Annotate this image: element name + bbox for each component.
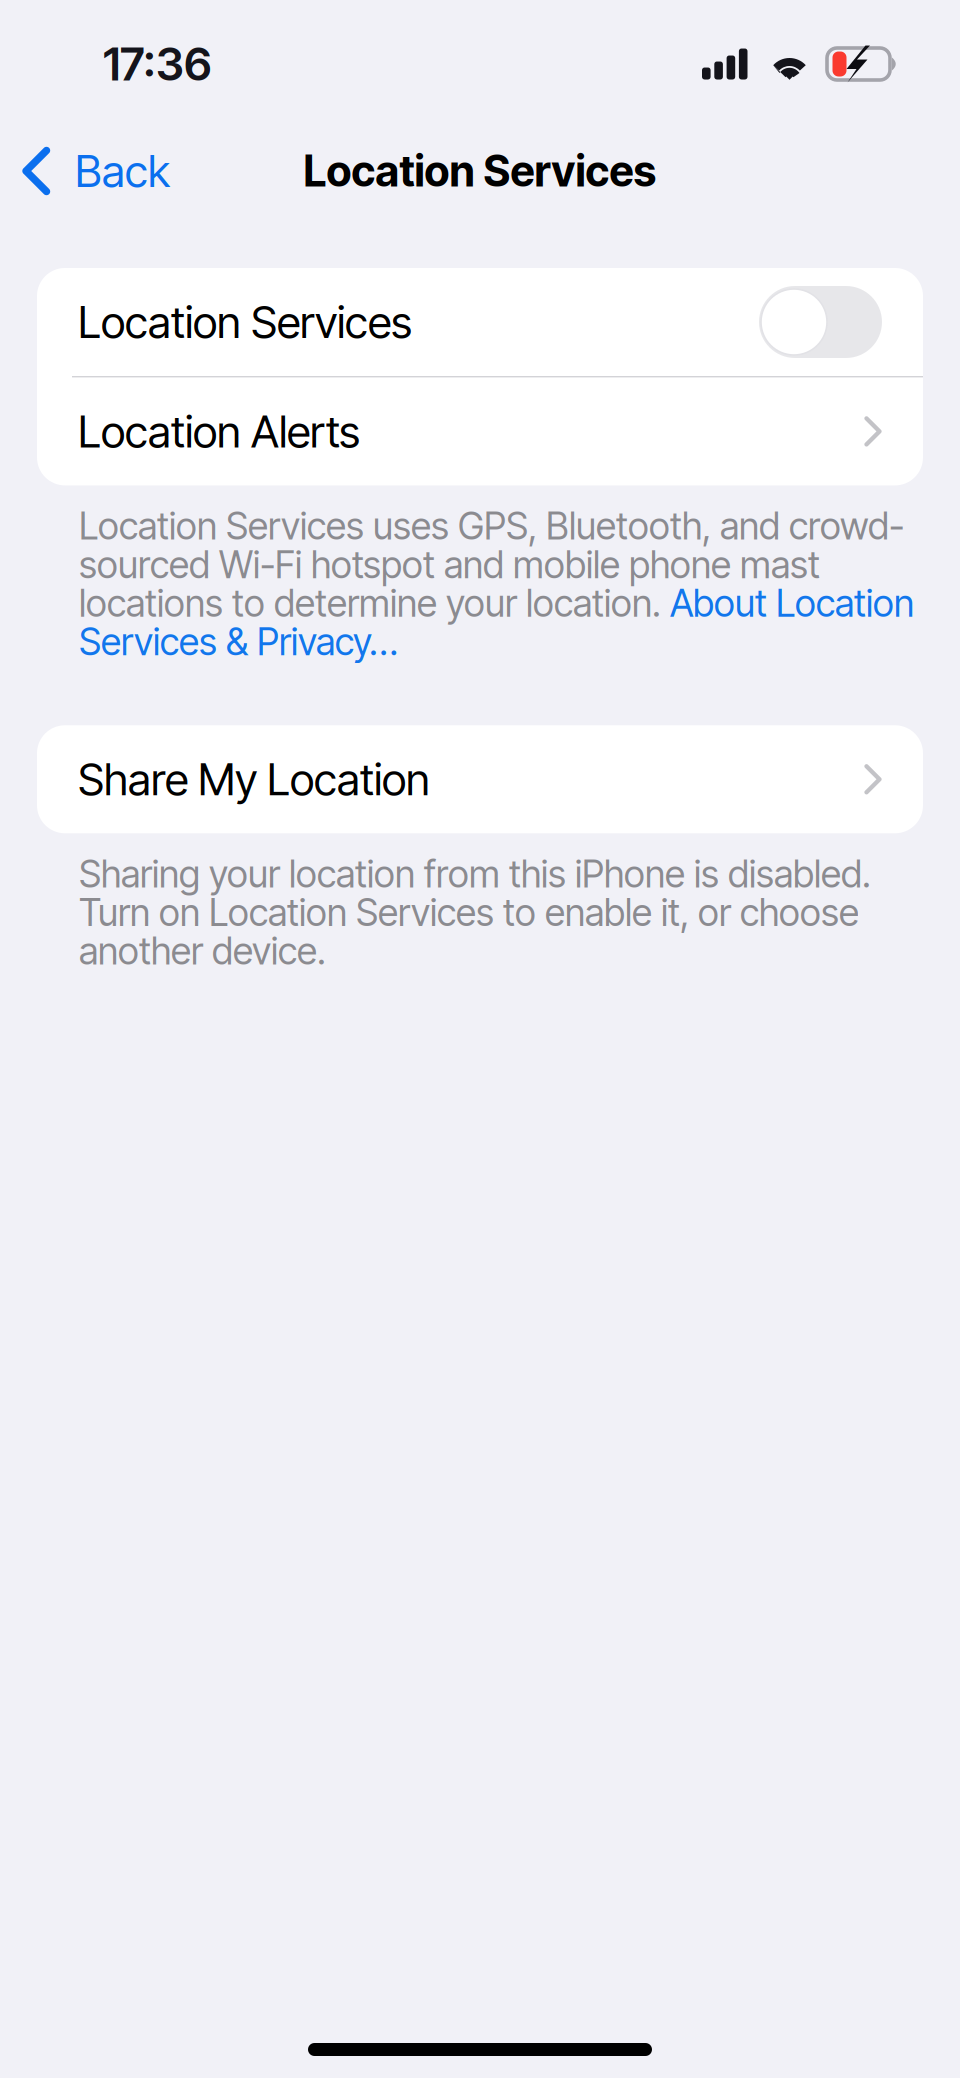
staticText: About Location: [670, 580, 914, 626]
staticText: Location Alerts: [78, 405, 360, 458]
button[interactable]: Location Alerts: [37, 377, 923, 485]
staticText: Sharing your location from this iPhone i…: [79, 851, 871, 896]
staticText: sourced Wi-Fi hotspot and mobile phone m…: [79, 542, 820, 587]
button[interactable]: Location Services: [37, 268, 923, 376]
staticText: 17:36: [103, 37, 212, 91]
staticText: Location Services: [78, 295, 412, 349]
staticText: another device.: [79, 928, 326, 974]
staticText: locations to determine your location.: [79, 580, 670, 626]
button[interactable]: Share My Location: [37, 725, 923, 833]
staticText: Services & Privacy…: [79, 619, 398, 664]
button[interactable]: Back: [0, 130, 188, 212]
staticText: Location Services uses GPS, Bluetooth, a…: [79, 503, 904, 549]
staticText: Share My Location: [78, 753, 430, 806]
staticText: Turn on Location Services to enable it, …: [79, 890, 859, 935]
staticText: Location Services: [303, 145, 656, 197]
staticText: Back: [75, 144, 170, 198]
